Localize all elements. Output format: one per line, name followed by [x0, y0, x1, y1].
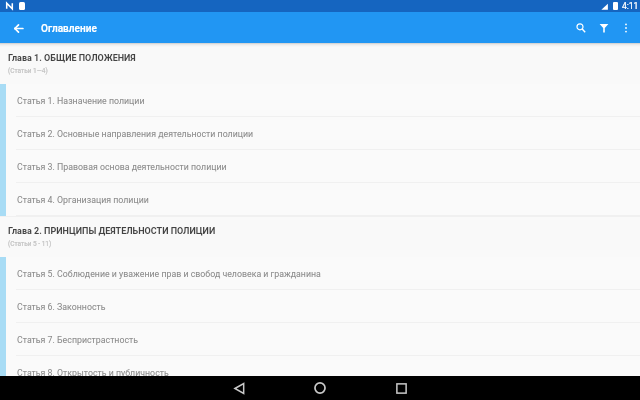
button[interactable]: Recents [381, 376, 421, 400]
button[interactable]: Статья 6. Законность [0, 290, 640, 323]
staticText: Статья 4. Организация полиции [17, 195, 149, 205]
button[interactable]: Статья 2. Основные направления деятельно… [0, 117, 640, 150]
button[interactable]: Статья 1. Назначение полиции [0, 84, 640, 117]
button[interactable]: Back [8, 18, 28, 38]
button[interactable]: More options [615, 17, 636, 38]
button[interactable]: Статья 8. Открытость и публичность [0, 356, 640, 389]
button[interactable]: Search [570, 17, 591, 38]
staticText: Глава 2. ПРИНЦИПЫ ДЕЯТЕЛЬНОСТИ ПОЛИЦИИ [8, 226, 216, 237]
staticText: (Статьи 1—4) [8, 67, 48, 75]
button[interactable]: Статья 9. Общественное доверие и поддерж… [0, 389, 640, 400]
button[interactable]: Статья 5. Соблюдение и уважение прав и с… [0, 257, 640, 290]
button[interactable]: Filter [593, 17, 614, 38]
staticText: Статья 5. Соблюдение и уважение прав и с… [17, 269, 321, 279]
staticText: Статья 3. Правовая основа деятельности п… [17, 162, 227, 172]
staticText: Глава 1. ОБЩИЕ ПОЛОЖЕНИЯ [8, 53, 136, 64]
button[interactable]: Home [300, 376, 340, 400]
staticText: Статья 8. Открытость и публичность [17, 368, 169, 378]
staticText: 4:11 [622, 1, 639, 11]
staticText: Статья 1. Назначение полиции [17, 96, 145, 106]
button[interactable]: Статья 4. Организация полиции [0, 183, 640, 216]
staticText: Статья 7. Беспристрастность [17, 335, 139, 345]
staticText: (Статьи 5 - 11) [8, 240, 52, 248]
staticText: Статья 6. Законность [17, 302, 106, 312]
staticText: Статья 2. Основные направления деятельно… [17, 129, 254, 139]
button[interactable]: Back [219, 376, 259, 400]
button[interactable]: Статья 7. Беспристрастность [0, 323, 640, 356]
staticText: Оглавление [41, 23, 97, 35]
button[interactable]: Статья 3. Правовая основа деятельности п… [0, 150, 640, 183]
